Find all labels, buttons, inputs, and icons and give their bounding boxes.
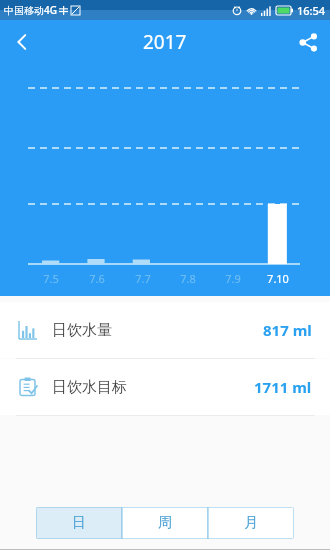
staticText: 7.5 — [43, 271, 59, 286]
staticText: 中国移动4G — [4, 3, 57, 17]
staticText: 日 — [72, 514, 86, 532]
staticText: 7.10 — [267, 271, 289, 286]
staticText: 7.9 — [225, 271, 241, 286]
staticText: 2017 — [143, 29, 187, 55]
staticText: 7.8 — [180, 271, 196, 286]
button[interactable]: 周 — [122, 507, 208, 539]
staticText: 7.7 — [135, 271, 151, 286]
button[interactable]: Back — [0, 20, 44, 64]
button[interactable]: 日饮水目标 — [0, 359, 330, 415]
staticText: 7.6 — [89, 271, 105, 286]
staticText: 日饮水目标 — [52, 378, 127, 397]
staticText: 16:54 — [297, 3, 326, 18]
button[interactable]: Share — [286, 20, 330, 64]
staticText: 周 — [158, 514, 172, 532]
button[interactable]: 日饮水量 — [0, 302, 330, 358]
staticText: 817 ml — [263, 320, 312, 340]
button[interactable]: 日 — [36, 507, 122, 539]
staticText: 月 — [244, 514, 258, 532]
button[interactable]: 月 — [208, 507, 294, 539]
staticText: 1711 ml — [254, 377, 312, 397]
staticText: 日饮水量 — [52, 321, 112, 340]
